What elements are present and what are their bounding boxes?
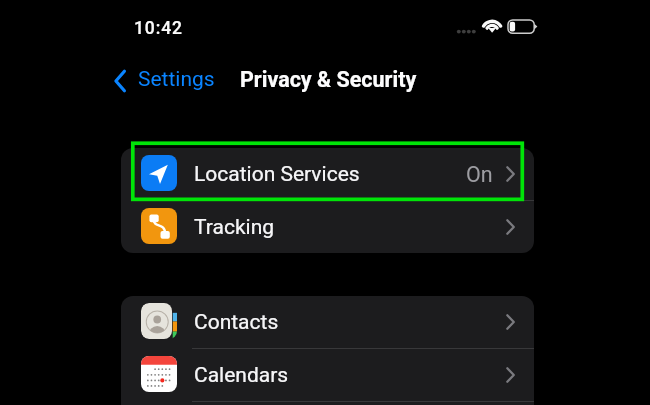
staticText: Contacts xyxy=(194,310,279,335)
button[interactable]: Back to Settings xyxy=(111,65,219,94)
button[interactable]: Tracking xyxy=(121,201,534,253)
button[interactable]: Calendars xyxy=(121,349,534,401)
staticText: Calendars xyxy=(194,363,289,388)
staticText: Location Services xyxy=(194,162,360,187)
staticText: On xyxy=(466,162,493,187)
staticText: Privacy & Security xyxy=(240,67,417,92)
staticText: Tracking xyxy=(194,215,275,240)
button[interactable]: Location Services xyxy=(121,148,534,200)
other: Signal, Wi-Fi and battery status xyxy=(452,15,542,37)
staticText: 10:42 xyxy=(134,18,183,39)
staticText: Settings xyxy=(138,67,215,92)
button[interactable]: Contacts xyxy=(121,296,534,348)
